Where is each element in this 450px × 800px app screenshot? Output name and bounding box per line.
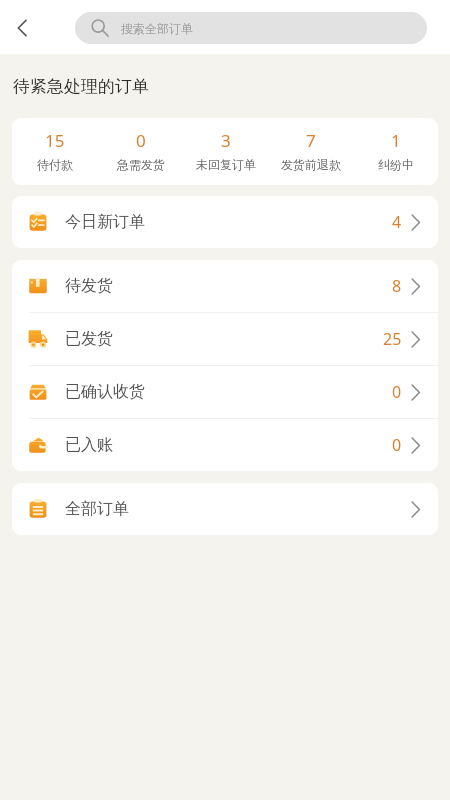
staticText: 待紧急处理的订单 [13,76,149,97]
staticText: 未回复订单 [196,157,256,172]
staticText: 待发货 [65,276,113,296]
staticText: 今日新订单 [65,212,145,232]
button[interactable]: 1 [353,118,438,185]
staticText: 搜索全部订单 [121,21,193,36]
staticText: 0 [136,129,146,152]
staticText: 0 [392,434,402,456]
button[interactable]: 15 [12,118,98,185]
staticText: 4 [392,211,402,233]
staticText: 已入账 [65,435,113,455]
staticText: 发货前退款 [281,157,341,172]
staticText: 8 [392,275,402,297]
button[interactable]: 已入账 [12,419,438,471]
button[interactable]: 3 [183,118,268,185]
staticText: 1 [391,129,401,152]
staticText: 7 [306,129,316,152]
staticText: 15 [45,129,65,152]
staticText: 0 [392,381,402,403]
staticText: 25 [383,328,402,350]
button[interactable]: 待发货 [12,260,438,312]
staticText: 已确认收货 [65,382,145,402]
staticText: 纠纷中 [378,157,414,172]
button[interactable]: 全部订单 [12,483,438,535]
button[interactable]: Back [4,10,40,46]
staticText: 全部订单 [65,499,129,519]
staticText: 已发货 [65,329,113,349]
button[interactable]: 0 [98,118,183,185]
staticText: 急需发货 [117,157,165,172]
button[interactable]: 今日新订单 [12,196,438,248]
button[interactable]: 已确认收货 [12,366,438,418]
button[interactable]: 7 [268,118,353,185]
staticText: 待付款 [37,157,73,172]
staticText: 3 [221,129,231,152]
button[interactable]: 已发货 [12,313,438,365]
button[interactable]: 搜索全部订单 [75,12,427,44]
